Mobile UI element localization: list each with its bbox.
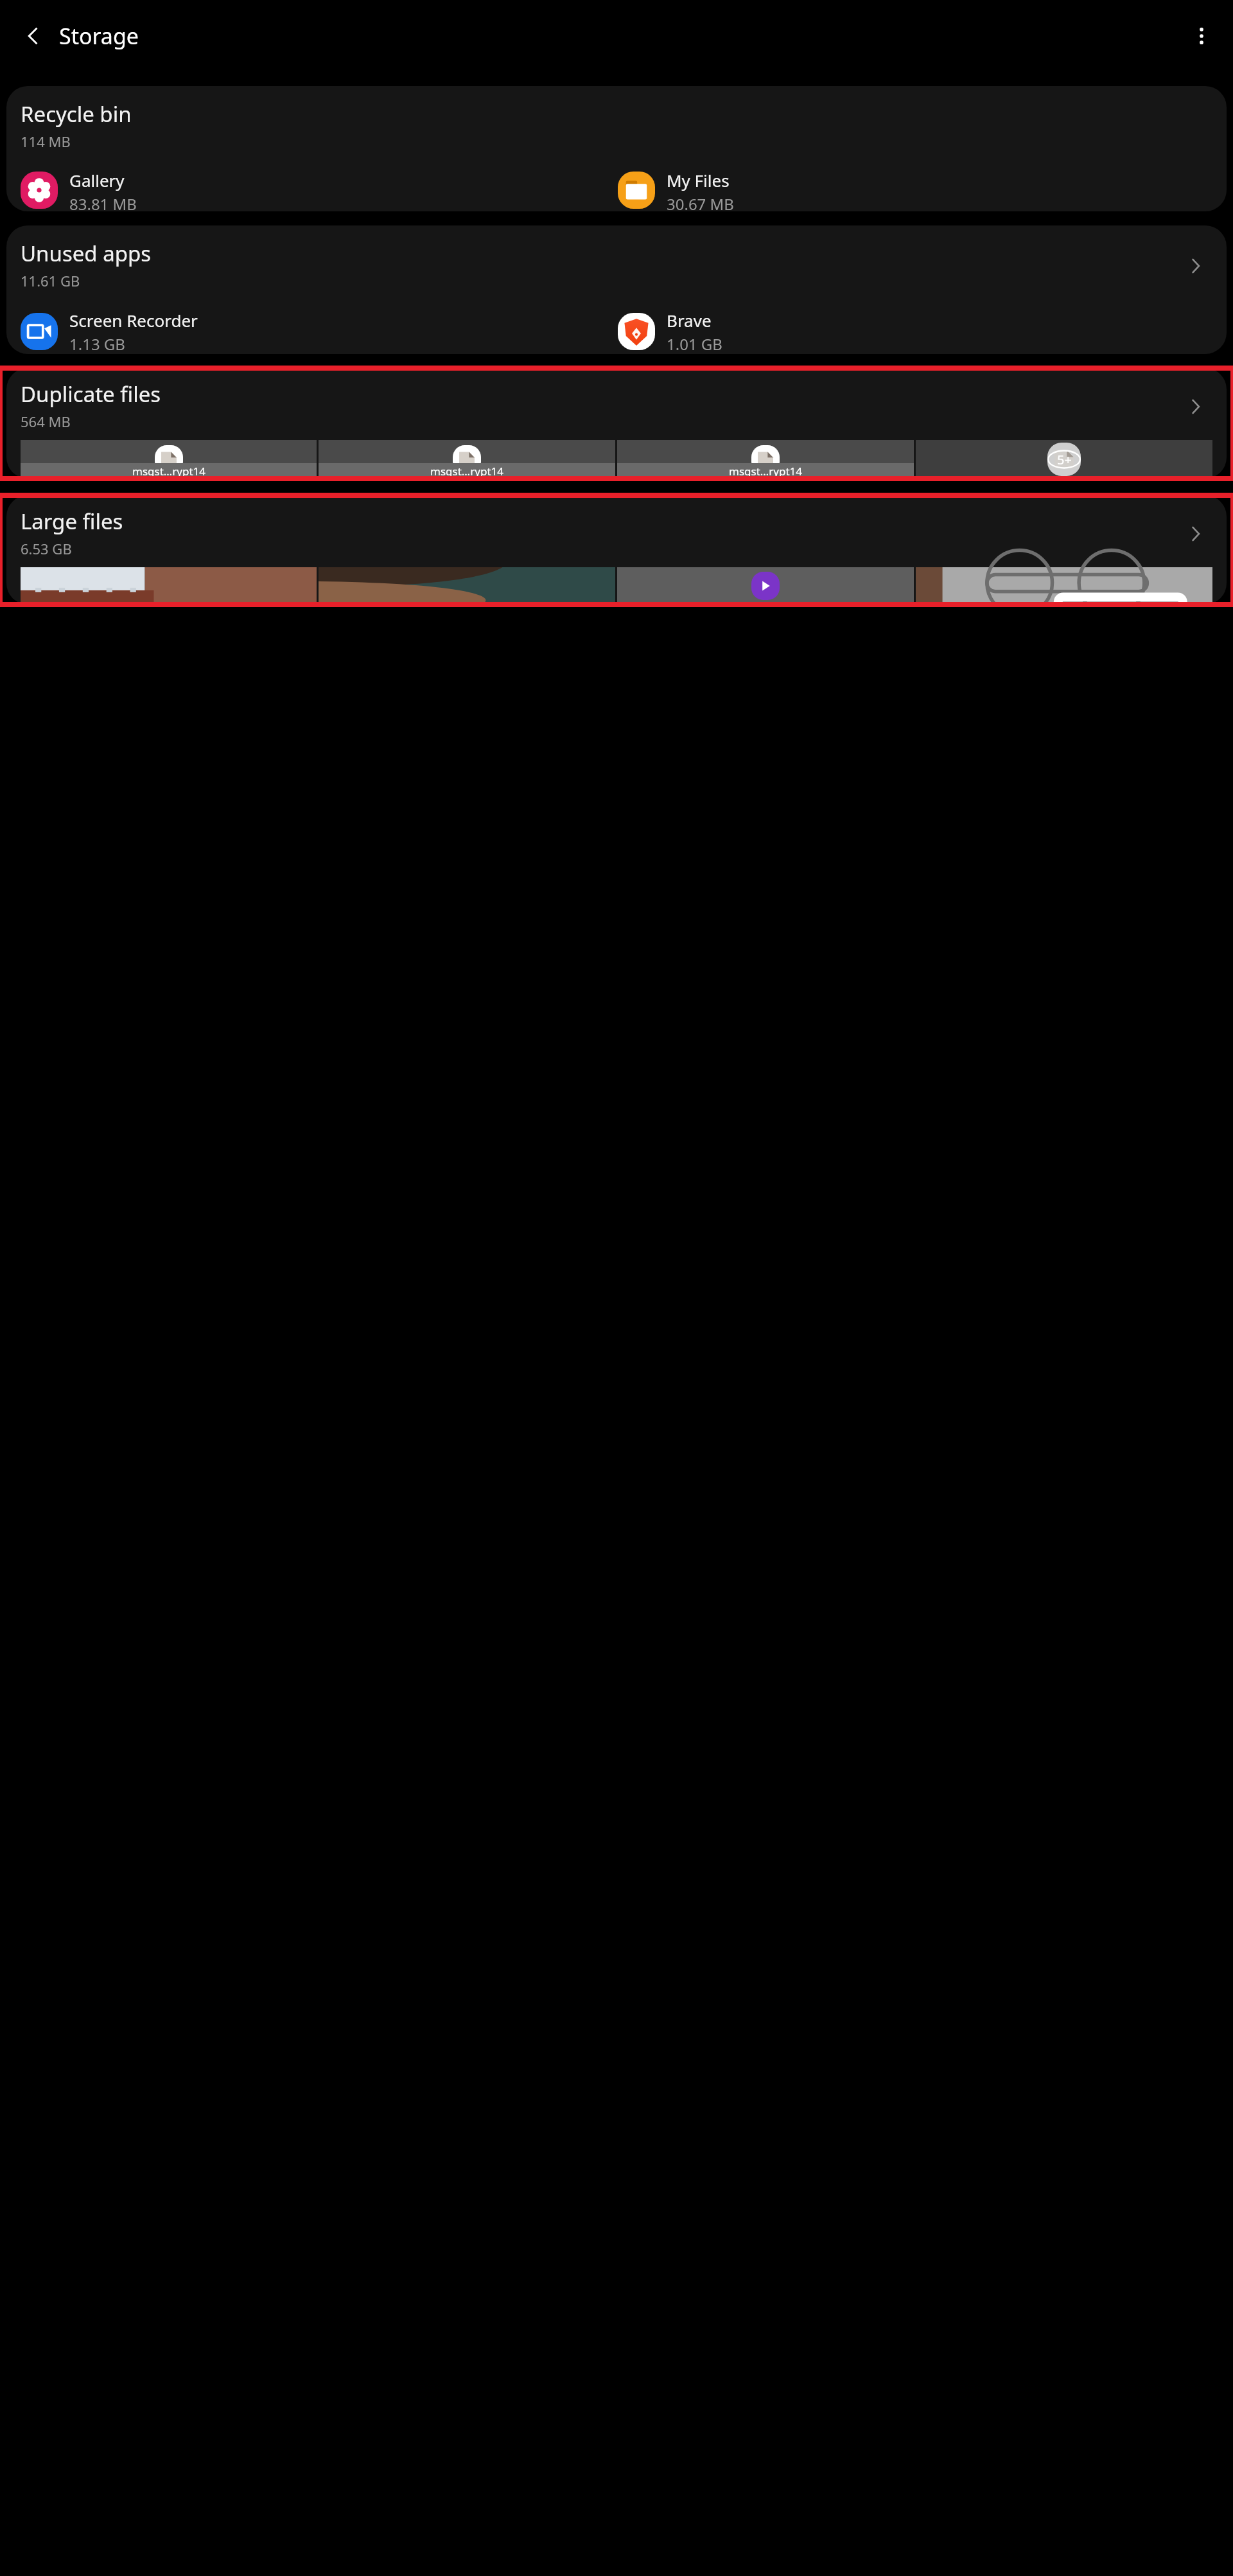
button[interactable]: Gallery (21, 169, 618, 211)
button[interactable]: Large files (6, 495, 1227, 604)
button[interactable]: 5 or more duplicates (916, 440, 1212, 479)
staticText: msgst…rypt14 (729, 464, 802, 479)
staticText: 83.81 MB (69, 193, 137, 211)
button[interactable]: msgst…rypt14 (617, 440, 914, 479)
staticText: Storage (59, 21, 139, 51)
staticText: Duplicate files (21, 380, 161, 409)
button[interactable]: Open (1178, 249, 1212, 283)
button[interactable] (617, 567, 914, 604)
staticText: Unused apps (21, 239, 152, 268)
staticText: Screen Recorder (69, 309, 198, 331)
staticText: 11.61 GB (21, 271, 80, 290)
button[interactable]: msgst…rypt14 (319, 440, 615, 479)
button[interactable]: My Files (618, 169, 1215, 211)
staticText: 30.67 MB (667, 193, 734, 211)
button[interactable]: Duplicate files (6, 368, 1227, 479)
button[interactable]: More options (1182, 16, 1221, 56)
staticText: Large files (21, 507, 123, 536)
staticText: My Files (667, 169, 730, 191)
staticText: msgst…rypt14 (430, 464, 503, 479)
button[interactable] (916, 567, 1212, 604)
staticText: 114 MB (21, 132, 71, 151)
staticText: 6.53 GB (21, 539, 72, 558)
button[interactable]: Recycle bin (6, 86, 1227, 211)
button[interactable] (21, 567, 317, 604)
staticText: 564 MB (21, 412, 71, 431)
staticText: Recycle bin (21, 100, 132, 128)
button[interactable]: Open (1178, 389, 1212, 424)
staticText: 1.13 GB (69, 333, 125, 354)
button[interactable]: Unused apps (6, 225, 1227, 354)
button[interactable]: Screen Recorder (21, 309, 618, 354)
staticText: Brave (667, 309, 712, 331)
button[interactable]: Back (14, 17, 53, 55)
button[interactable]: Brave (618, 309, 1215, 354)
staticText: 1.01 GB (667, 333, 722, 354)
button[interactable]: Open (1178, 516, 1212, 551)
button[interactable]: msgst…rypt14 (21, 440, 317, 479)
button[interactable] (319, 567, 615, 604)
staticText: 5+ (1057, 451, 1072, 468)
staticText: Gallery (69, 169, 125, 191)
staticText: msgst…rypt14 (132, 464, 205, 479)
